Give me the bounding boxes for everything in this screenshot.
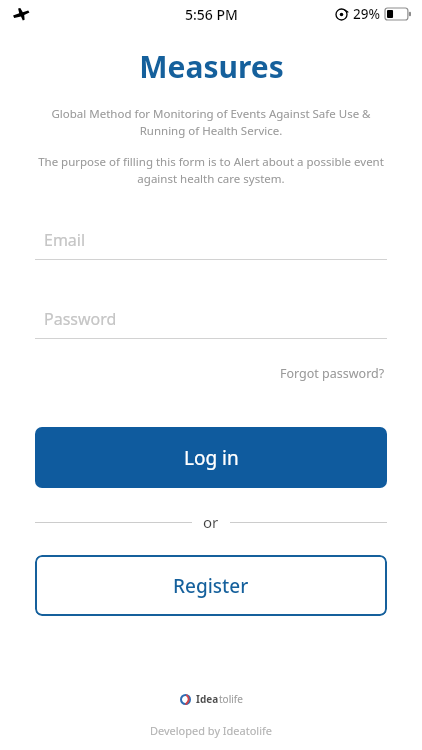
staticText: Log in [184, 445, 239, 471]
staticText: Password [44, 308, 117, 330]
button[interactable]: Forgot password? [278, 361, 387, 386]
staticText: Idea [196, 692, 219, 706]
staticText: Register [173, 573, 249, 599]
staticText: 29% [353, 5, 380, 23]
button[interactable]: Log in [35, 427, 387, 488]
staticText: The purpose of filling this form is to A… [36, 154, 386, 186]
staticText: tolife [219, 692, 243, 706]
staticText: Developed by Ideatolife [0, 723, 422, 738]
staticText: 5:56 PM [185, 5, 238, 24]
staticText: or [203, 512, 219, 532]
staticText: Global Method for Monitoring of Events A… [36, 106, 386, 138]
button[interactable]: Email [35, 225, 387, 260]
staticText: Measures [139, 46, 284, 87]
staticText: Email [44, 229, 86, 251]
button[interactable]: Register [35, 555, 387, 616]
staticText: Forgot password? [280, 365, 385, 382]
button[interactable]: Password [35, 304, 387, 339]
